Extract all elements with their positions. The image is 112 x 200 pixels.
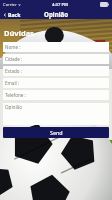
staticText: 4:37 PM <box>52 2 69 8</box>
button[interactable]: Send <box>3 127 109 138</box>
button[interactable]: Nome : <box>3 42 109 52</box>
staticText: Estado : <box>5 68 23 74</box>
button[interactable]: Telefone : <box>3 90 109 100</box>
staticText: Email : <box>5 80 20 86</box>
button[interactable]: Cidade : <box>3 54 109 64</box>
staticText: Opinião <box>44 10 69 18</box>
staticText: Carrier <box>3 2 17 8</box>
staticText: Cidade : <box>5 56 23 62</box>
staticText: Back <box>8 11 21 18</box>
staticText: Opinião <box>5 104 22 110</box>
staticText: Telefone : <box>5 92 26 98</box>
staticText: Send <box>50 129 63 136</box>
button[interactable]: Back <box>0 10 24 19</box>
staticText: Dúvidas <box>4 28 34 38</box>
button[interactable]: Opinião <box>3 103 109 125</box>
staticText: Nome : <box>5 44 21 50</box>
button[interactable]: Estado : <box>3 66 109 76</box>
button[interactable]: Email : <box>3 78 109 88</box>
